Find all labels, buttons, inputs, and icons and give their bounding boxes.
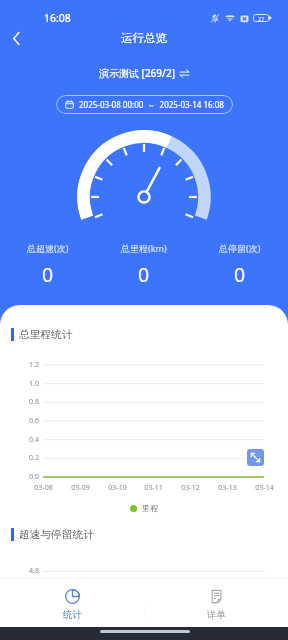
staticText: 总停留(次) xyxy=(219,242,261,254)
staticText: 0.4 xyxy=(29,435,39,445)
staticText: 03-12 xyxy=(181,483,200,493)
staticText: 0.8 xyxy=(29,397,39,407)
staticText: 16:08 xyxy=(44,11,71,25)
staticText: 03-09 xyxy=(71,483,90,493)
staticText: 27 xyxy=(258,15,265,22)
staticText: 0 xyxy=(234,261,246,288)
button[interactable]: 总停留(次) xyxy=(192,242,288,288)
staticText: 0.6 xyxy=(29,416,39,426)
staticText: 0 xyxy=(42,261,54,288)
staticText: 0 xyxy=(138,261,150,288)
button[interactable]: Back xyxy=(3,25,29,51)
button[interactable]: 总里程(km) xyxy=(96,242,192,288)
staticText: 运行总览 xyxy=(121,31,167,45)
staticText: 03-08 xyxy=(34,483,53,493)
staticText: 0.0 xyxy=(29,472,39,482)
staticText: 详单 xyxy=(207,609,226,621)
staticText: 演示测试 [269/2] xyxy=(99,66,175,80)
staticText: 2025-03-08 00:00 ～ 2025-03-14 16:08 xyxy=(79,99,224,110)
staticText: 总里程(km) xyxy=(121,242,167,254)
staticText: 1.0 xyxy=(29,379,39,389)
staticText: 03-13 xyxy=(218,483,237,493)
button[interactable]: 总超速(次) xyxy=(0,242,96,288)
staticText: 总超速(次) xyxy=(27,242,69,254)
button[interactable]: Expand chart xyxy=(247,449,264,466)
staticText: 03-10 xyxy=(108,483,127,493)
staticText: 总里程统计 xyxy=(19,328,73,341)
staticText: 里程 xyxy=(142,503,158,513)
staticText: 0.2 xyxy=(29,453,39,463)
staticText: 1.2 xyxy=(29,360,39,370)
button[interactable]: 详单 xyxy=(144,578,288,627)
staticText: 超速与停留统计 xyxy=(19,528,94,541)
staticText: 03-14 xyxy=(255,483,274,493)
staticText: 统计 xyxy=(63,609,82,621)
button[interactable]: 演示测试 [269/2] xyxy=(93,64,196,82)
button[interactable]: 统计 xyxy=(0,578,144,627)
staticText: 03-11 xyxy=(144,483,163,493)
staticText: 4.8 xyxy=(29,566,39,576)
button[interactable]: 2025-03-08 00:00 ～ 2025-03-14 16:08 xyxy=(56,95,233,114)
